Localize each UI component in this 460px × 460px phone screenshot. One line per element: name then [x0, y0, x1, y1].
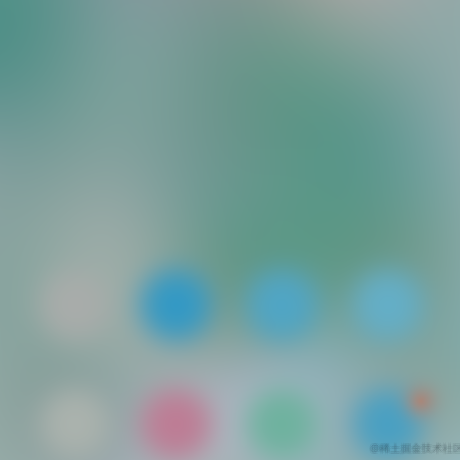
button[interactable]: Browser	[254, 277, 310, 333]
button[interactable]: Music	[148, 396, 204, 452]
button[interactable]: Messages	[148, 277, 204, 333]
button[interactable]: Camera	[47, 277, 103, 333]
button[interactable]: Mail	[360, 396, 416, 452]
button[interactable]: Phone	[254, 396, 310, 452]
button[interactable]: Gallery	[47, 396, 103, 452]
button[interactable]: Weather	[360, 277, 416, 333]
